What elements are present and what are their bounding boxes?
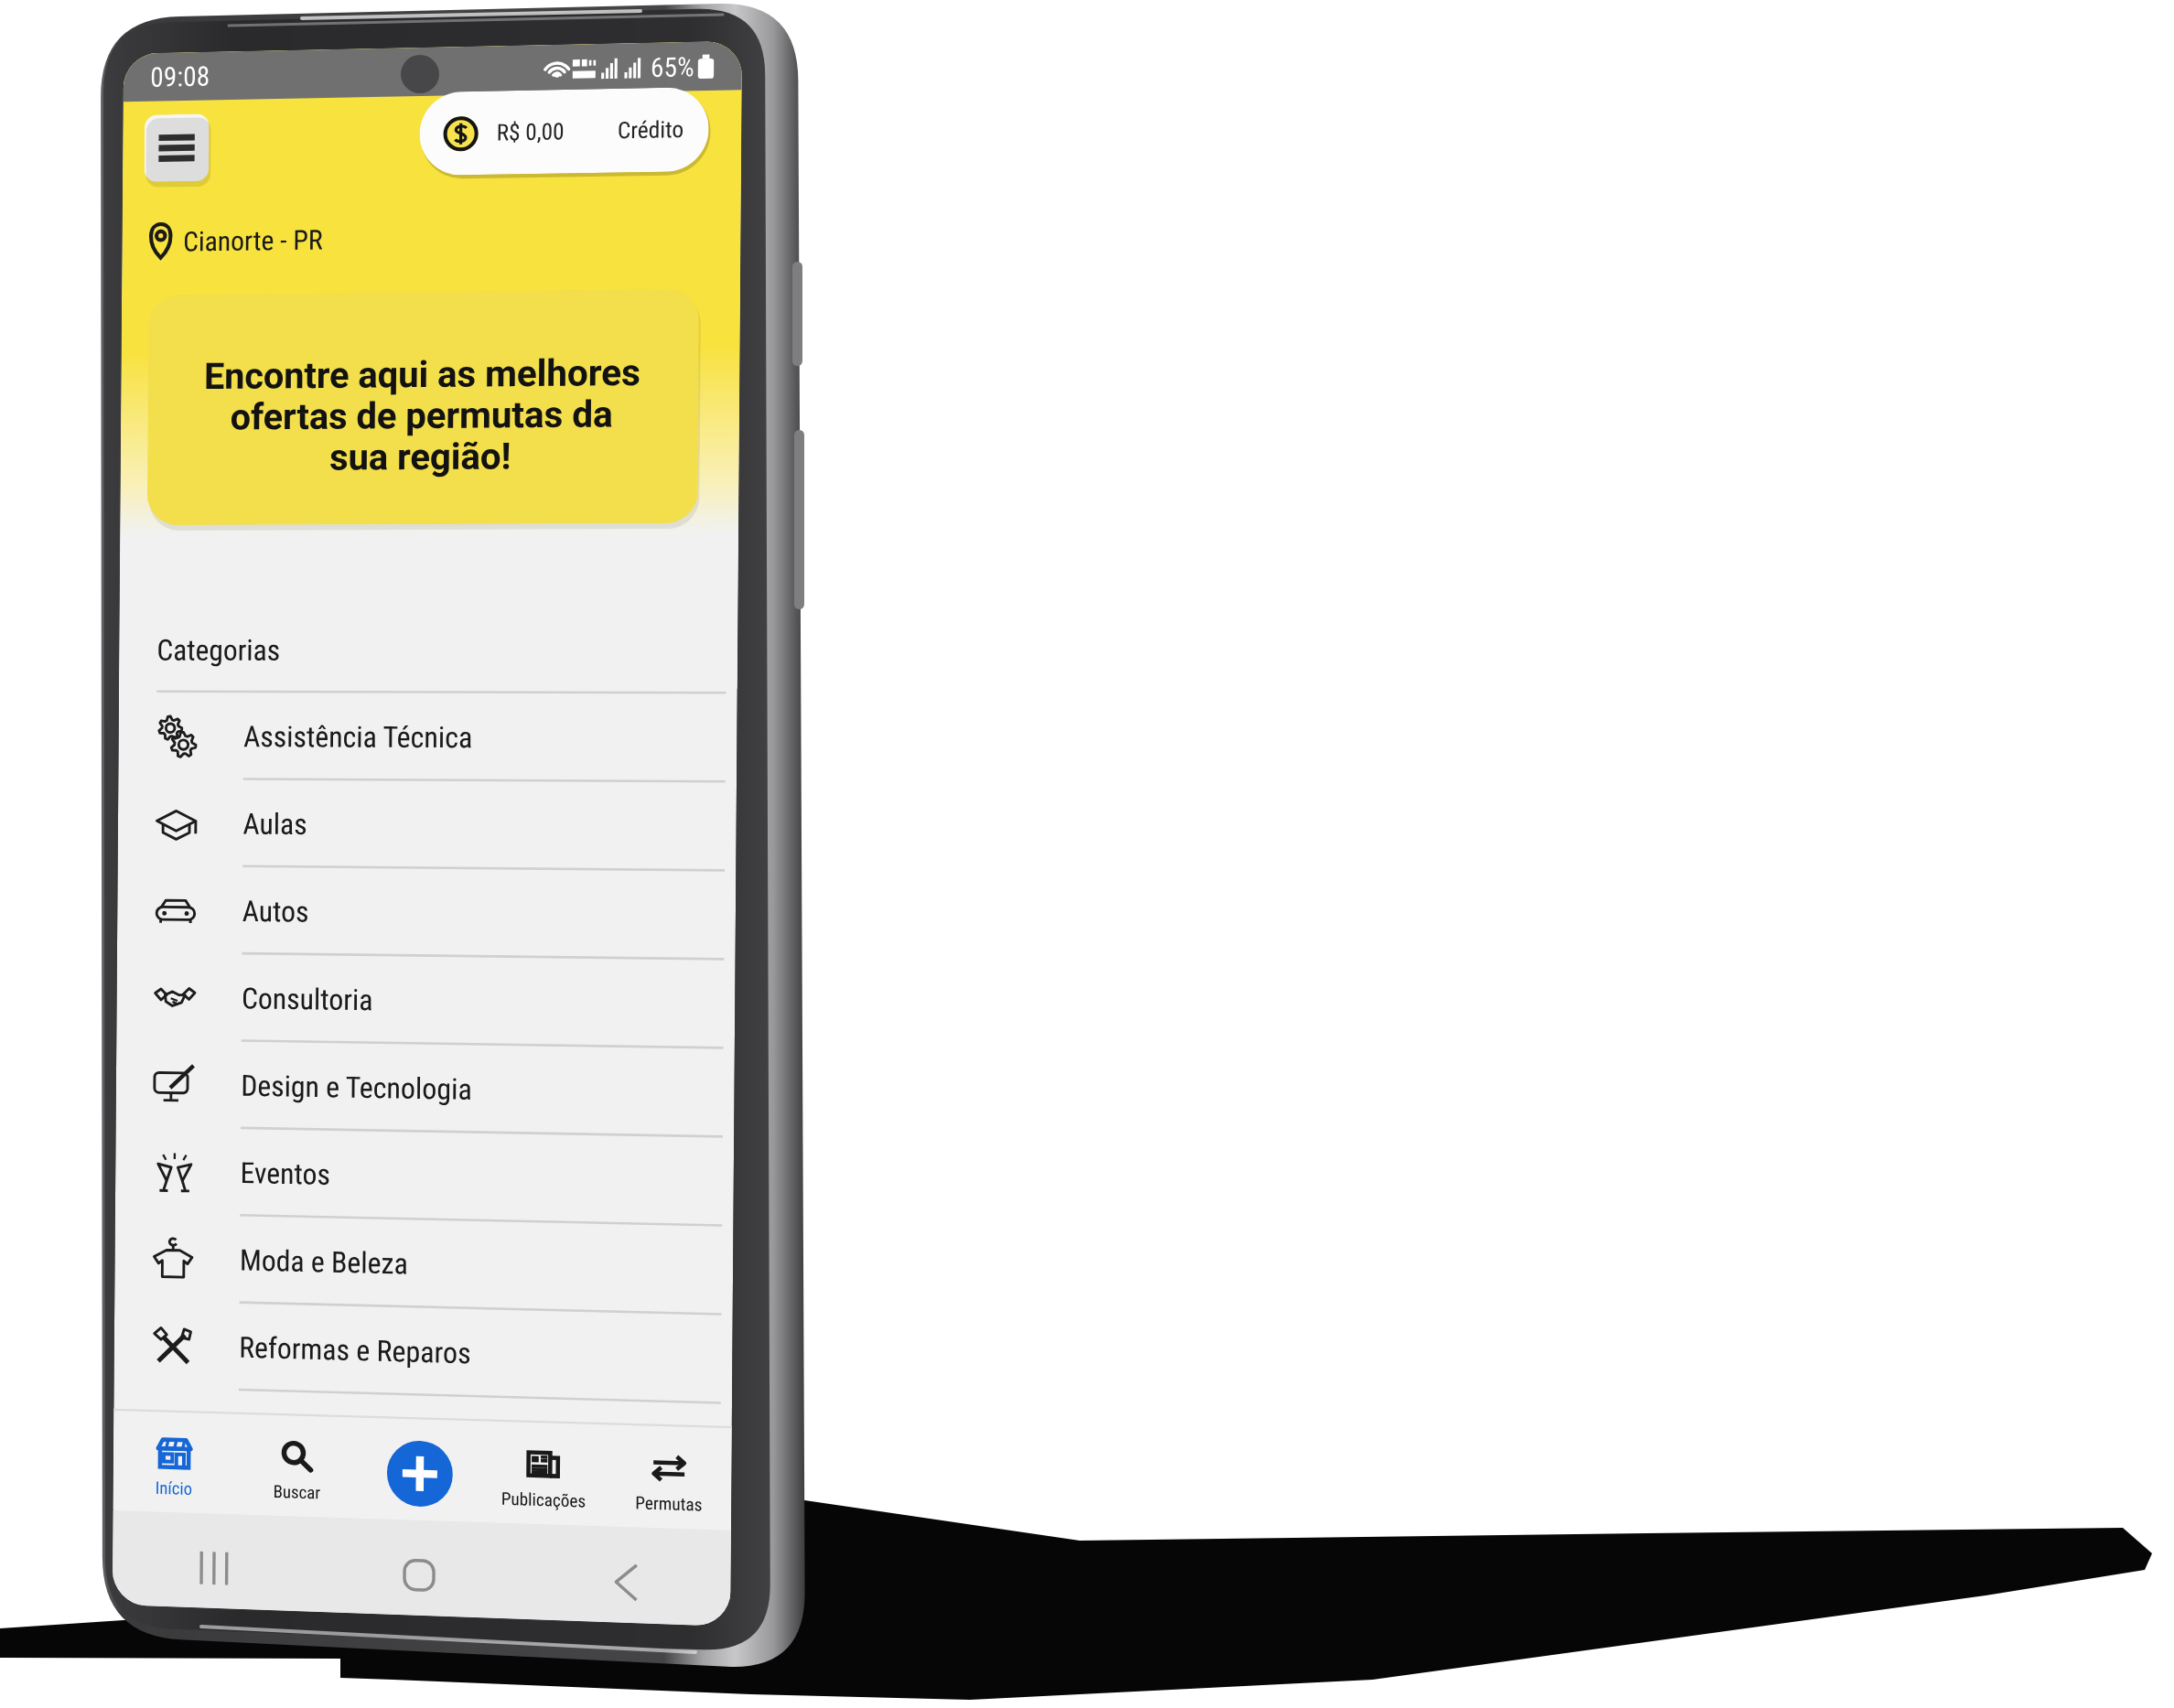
button[interactable]: Moda e Beleza	[115, 1214, 733, 1316]
staticText: Início	[155, 1477, 193, 1499]
staticText: Publicações	[501, 1488, 586, 1511]
button[interactable]: Adicionar	[387, 1440, 453, 1508]
button[interactable]: Design e Tecnologia	[116, 1040, 735, 1138]
staticText: R$ 0,00	[496, 118, 565, 146]
staticText: Autos	[242, 894, 309, 929]
button[interactable]: Reformas e Reparos	[114, 1301, 733, 1405]
button[interactable]: Publicações	[481, 1419, 606, 1524]
staticText: Categorias	[157, 633, 280, 668]
staticText: Permutas	[635, 1492, 702, 1515]
staticText: Crédito	[617, 116, 685, 144]
button[interactable]: Encontre aqui as melhores ofertas de per…	[147, 288, 699, 525]
staticText: Design e Tecnologia	[241, 1068, 472, 1107]
button[interactable]: Autos	[117, 866, 736, 961]
staticText: 09:08	[150, 60, 211, 93]
button[interactable]: Aulas	[118, 780, 737, 872]
staticText: Aulas	[243, 807, 308, 842]
button[interactable]: Menu	[144, 114, 209, 182]
button[interactable]: Início	[113, 1408, 236, 1513]
button[interactable]: Permutas	[605, 1422, 732, 1529]
staticText: Eventos	[240, 1156, 331, 1192]
button[interactable]: Consultoria	[116, 953, 735, 1049]
button[interactable]: Buscar	[235, 1412, 358, 1517]
staticText: Encontre aqui as melhores ofertas de per…	[203, 351, 641, 479]
button[interactable]: Voltar	[522, 1524, 731, 1627]
button[interactable]: R$ 0,00	[419, 87, 709, 176]
staticText: Cianorte - PR	[183, 224, 323, 258]
staticText: Assistência Técnica	[243, 719, 473, 755]
button[interactable]: Recentes	[112, 1510, 317, 1612]
button[interactable]: Início do sistema	[316, 1517, 522, 1619]
button[interactable]: Cianorte - PR	[147, 221, 323, 260]
staticText: Buscar	[273, 1481, 321, 1503]
staticText: Reformas e Reparos	[239, 1330, 471, 1371]
staticText: Moda e Beleza	[240, 1243, 409, 1281]
button[interactable]: Eventos	[115, 1127, 734, 1227]
staticText: 65%	[650, 51, 694, 83]
staticText: Consultoria	[241, 981, 373, 1018]
button[interactable]: Assistência Técnica	[118, 693, 737, 783]
